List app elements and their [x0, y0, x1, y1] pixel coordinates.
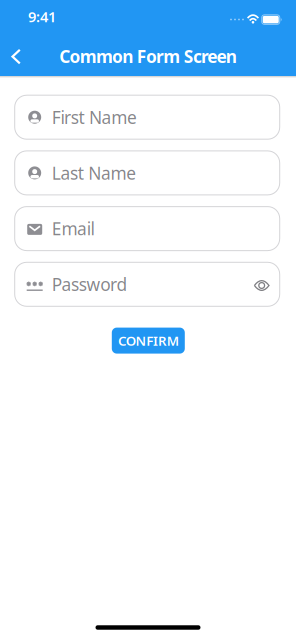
staticText: Password	[52, 273, 128, 296]
staticText: First Name	[52, 106, 137, 129]
button[interactable]: First Name	[15, 95, 280, 139]
staticText: Email	[52, 217, 94, 240]
button[interactable]: Last Name	[15, 151, 280, 195]
button[interactable]	[11, 49, 21, 65]
staticText: Last Name	[52, 161, 136, 184]
button[interactable]: Password	[15, 262, 280, 306]
button[interactable]: CONFIRM	[112, 328, 185, 354]
staticText: CONFIRM	[118, 332, 179, 349]
button[interactable]: Email	[15, 207, 280, 251]
button[interactable]	[254, 279, 270, 290]
staticText: Common Form Screen	[59, 45, 237, 68]
staticText: 9:41	[28, 7, 56, 26]
